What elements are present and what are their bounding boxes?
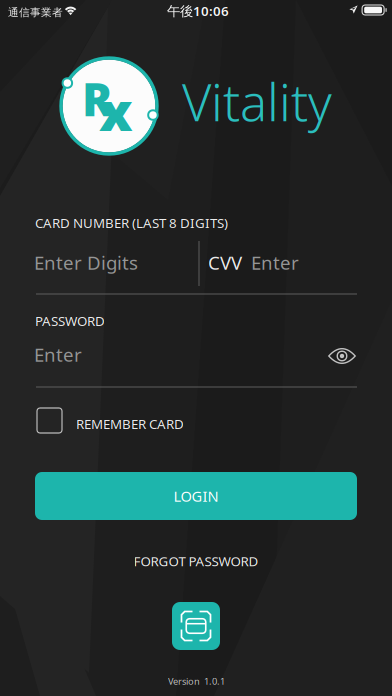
button[interactable]: Scan card	[172, 602, 220, 650]
button[interactable]: LOGIN	[35, 472, 357, 520]
button[interactable]: FORGOT PASSWORD	[114, 548, 278, 574]
button[interactable]: REMEMBER CARD	[37, 406, 227, 436]
staticText: Enter Digits	[34, 250, 138, 275]
staticText: REMEMBER CARD	[76, 415, 184, 433]
staticText: Vitality	[182, 68, 332, 135]
staticText: R	[82, 68, 113, 129]
staticText: Version 1.0.1	[168, 675, 225, 687]
staticText: 通信事業者	[8, 6, 63, 19]
staticText: CARD NUMBER (LAST 8 DIGITS)	[35, 214, 228, 232]
staticText: x	[99, 75, 133, 146]
staticText: CVV	[208, 250, 242, 275]
staticText: LOGIN	[173, 486, 218, 506]
staticText: Enter	[34, 342, 82, 367]
staticText: 午後10:06	[167, 2, 229, 20]
staticText: FORGOT PASSWORD	[133, 552, 258, 570]
staticText: PASSWORD	[35, 312, 105, 330]
staticText: Enter	[251, 250, 299, 275]
button[interactable]: Show password	[320, 336, 364, 376]
